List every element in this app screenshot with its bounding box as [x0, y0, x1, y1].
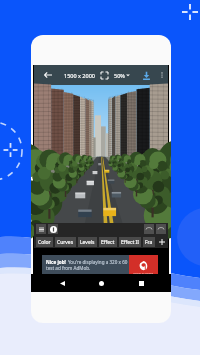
staticText: Color: [38, 239, 51, 246]
button[interactable]: Info: [48, 224, 58, 234]
staticText: Levels: [80, 239, 95, 246]
button[interactable]: Back: [40, 65, 56, 85]
button[interactable]: Curves: [57, 237, 74, 247]
button[interactable]: Effect II: [121, 237, 139, 247]
staticText: 50%: [114, 72, 125, 79]
staticText: test ad from AdMob.: [46, 265, 91, 271]
button[interactable]: Recents: [132, 274, 150, 292]
button[interactable]: Add: [157, 237, 167, 247]
button[interactable]: Redo: [156, 224, 166, 234]
staticText: You're displaying a 320 x 60: [68, 259, 128, 265]
button[interactable]: Fullscreen: [97, 65, 111, 85]
staticText: Nice job!: [46, 259, 68, 265]
button[interactable]: Color: [38, 237, 51, 247]
button[interactable]: Fra: [145, 237, 153, 247]
button[interactable]: Back: [53, 274, 71, 292]
button[interactable]: Home: [92, 274, 110, 292]
button[interactable]: Levels: [80, 237, 95, 247]
staticText: Curves: [57, 239, 74, 246]
staticText: Effect II: [121, 239, 139, 246]
button[interactable]: Download: [138, 65, 154, 85]
staticText: 1500 x 2000: [64, 72, 95, 79]
staticText: Fra: [145, 239, 153, 246]
button[interactable]: Menu: [36, 224, 46, 234]
button[interactable]: Nice job!: [42, 255, 158, 275]
button[interactable]: Effect: [101, 237, 115, 247]
button[interactable]: More options: [155, 65, 168, 85]
button[interactable]: 50%: [114, 65, 131, 85]
button[interactable]: Undo: [144, 224, 154, 234]
staticText: Effect: [101, 239, 115, 246]
staticText: AdMob by Google: [133, 271, 154, 274]
